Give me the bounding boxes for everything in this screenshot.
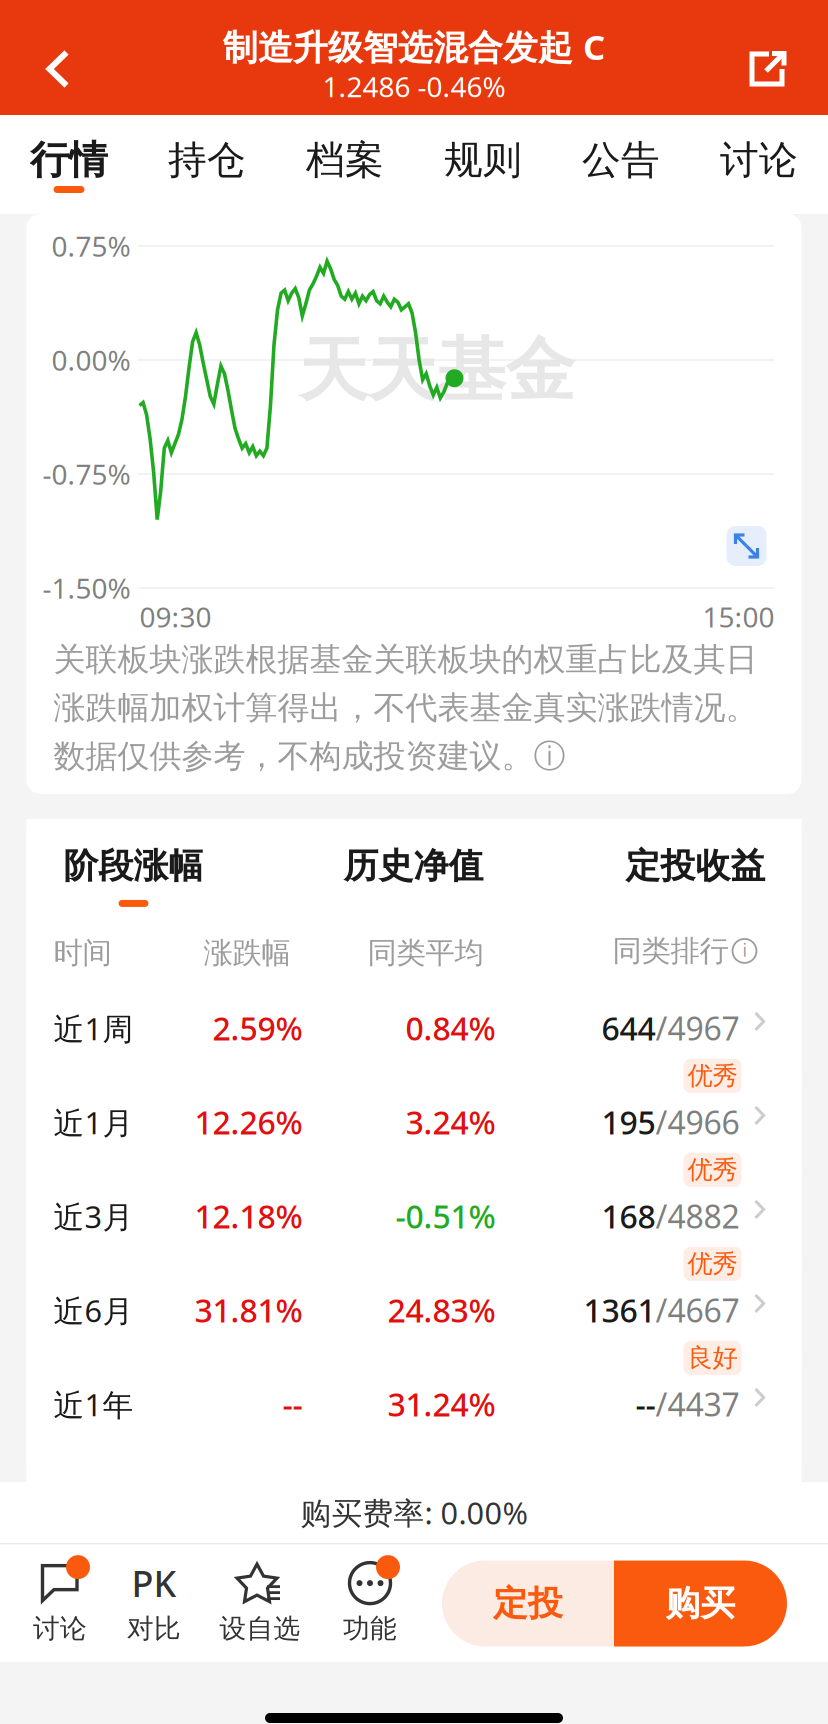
staticText: 讨论 [33,1612,87,1645]
staticText: 195 [601,1101,655,1143]
staticText: 09:30 [139,598,211,635]
staticText: 历史净值 [343,845,483,887]
staticText: 公告 [582,136,660,184]
button[interactable]: 设自选 [205,1553,315,1653]
staticText: 良好 [687,1342,737,1373]
staticText: 定投 [493,1582,563,1625]
staticText: 关联板块涨跌根据基金关联板块的权重占比及其日涨跌幅加权计算得出，不代表基金真实涨… [53,640,757,776]
staticText: 设自选 [219,1612,300,1645]
button[interactable]: PK [106,1553,202,1653]
button[interactable]: 历史净值 [323,819,503,923]
staticText: 优秀 [687,1154,737,1185]
staticText: -1.50% [42,569,130,607]
staticText: 同类排行 [612,933,728,969]
staticText: -- [282,1383,302,1425]
staticText: 近3月 [53,1196,133,1237]
button[interactable]: 定投 [442,1560,614,1646]
staticText: 近1年 [53,1384,133,1425]
staticText: 制造升级智选混合发起 C [223,23,605,69]
staticText: 购买 [665,1582,735,1625]
button[interactable]: 近6月 [26,1261,801,1355]
button[interactable]: 档案 [276,115,414,214]
staticText: 12.26% [194,1101,302,1143]
button[interactable]: 规则 [414,115,552,214]
staticText: 优秀 [687,1248,737,1279]
staticText: 1361 [583,1289,655,1331]
staticText: 近1周 [53,1008,133,1049]
staticText: 近6月 [53,1290,133,1331]
staticText: 12.18% [194,1195,302,1237]
button[interactable]: 持仓 [138,115,276,214]
button[interactable]: Fullscreen [726,526,766,566]
button[interactable]: 功能 [322,1553,418,1653]
staticText: 对比 [127,1612,181,1645]
staticText: 行情 [30,136,108,184]
button[interactable]: 定投收益 [605,819,785,923]
staticText: PK [131,1559,176,1607]
staticText: 优秀 [687,1060,737,1091]
button[interactable]: 讨论 [12,1553,108,1653]
staticText: -- [635,1383,655,1425]
staticText: -0.51% [395,1195,495,1237]
staticText: 2.59% [212,1007,302,1049]
button[interactable]: 近1周 [26,979,801,1073]
staticText: /4882 [655,1195,739,1237]
button[interactable]: 购买 [614,1560,787,1646]
staticText: 15:00 [702,598,774,635]
staticText: 168 [601,1195,655,1237]
staticText: 同类平均 [367,935,483,971]
staticText: 时间 [53,935,111,971]
staticText: i [742,938,746,961]
staticText: /4967 [655,1007,739,1049]
staticText: 功能 [343,1612,397,1645]
staticText: 3.24% [405,1101,495,1143]
staticText: 档案 [306,136,384,184]
button[interactable]: 近1年 [26,1355,801,1449]
button[interactable]: 公告 [552,115,690,214]
button[interactable]: 阶段涨幅 [43,819,223,923]
staticText: -0.75% [42,455,130,493]
staticText: 规则 [444,136,522,184]
staticText: 31.81% [194,1289,302,1331]
staticText: 涨跌幅 [203,935,290,971]
staticText: /4966 [655,1101,739,1143]
staticText: 24.83% [387,1289,495,1331]
button[interactable]: 近3月 [26,1167,801,1261]
staticText: 0.75% [51,227,130,265]
button[interactable]: 近1月 [26,1073,801,1167]
staticText: 阶段涨幅 [63,845,203,887]
staticText: 0.84% [405,1007,495,1049]
staticText: 天天基金 [298,328,574,413]
button[interactable]: Share [732,32,804,106]
staticText: 31.24% [387,1383,495,1425]
staticText: 购买费率: 0.00% [300,1492,527,1533]
button[interactable]: 讨论 [690,115,828,214]
staticText: /4667 [655,1289,739,1331]
button[interactable]: 行情 [0,115,138,214]
staticText: /4437 [655,1383,739,1425]
staticText: 近1月 [53,1102,133,1143]
staticText: 644 [601,1007,655,1049]
staticText: 讨论 [720,136,798,184]
staticText: 定投收益 [625,845,765,887]
staticText: 持仓 [168,136,246,184]
button[interactable]: Back [22,32,94,106]
staticText: 1.2486 -0.46% [322,68,505,105]
staticText: 0.00% [51,341,130,379]
